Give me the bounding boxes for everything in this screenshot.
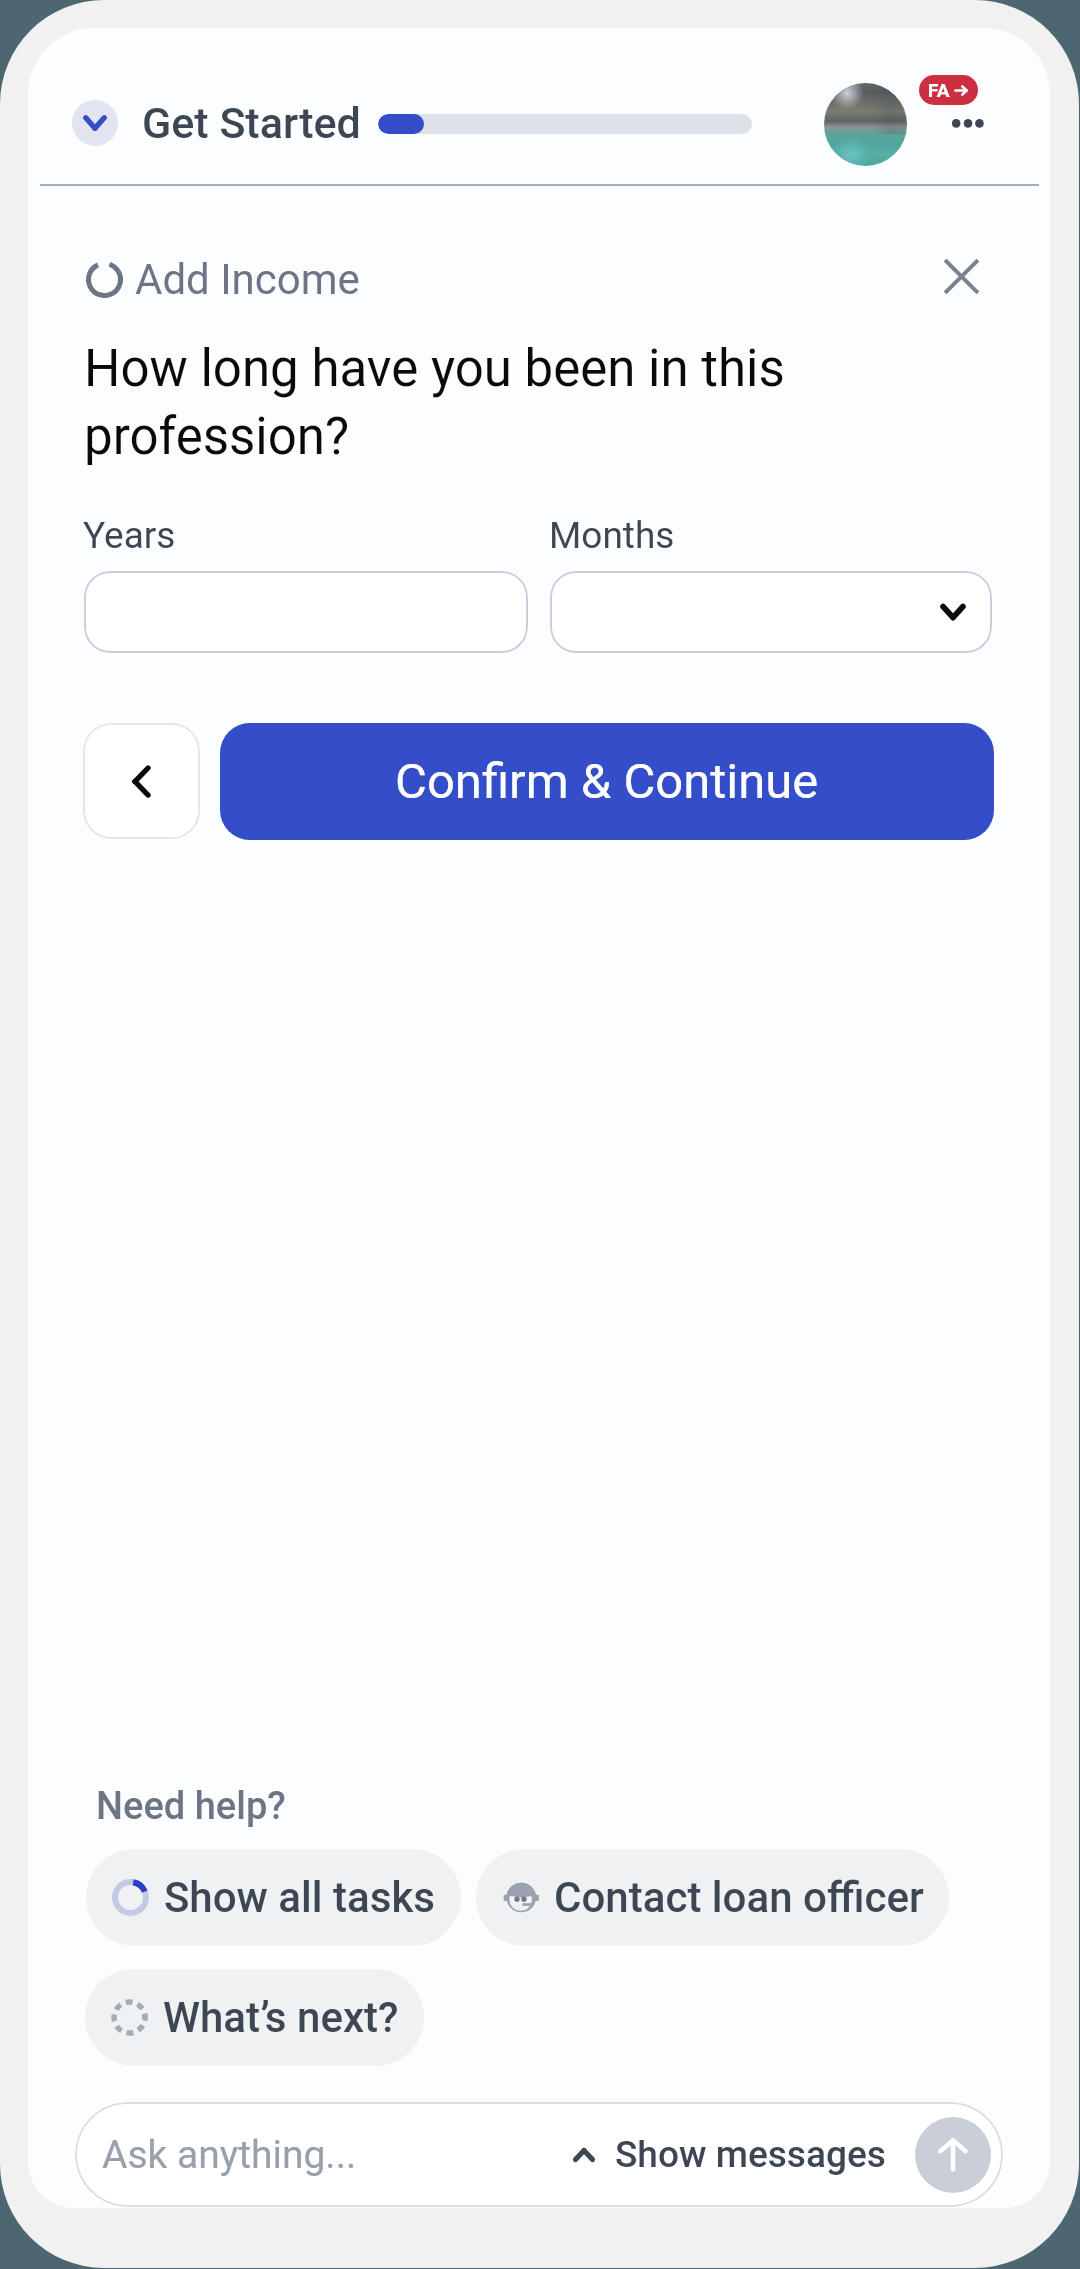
button[interactable]: Send (915, 2117, 991, 2193)
button[interactable]: What’s next? (85, 1969, 424, 2066)
button[interactable]: Months dropdown (550, 571, 992, 653)
button[interactable]: Confirm & Continue (220, 723, 994, 840)
staticText: Ask anything... (102, 2132, 357, 2178)
staticText: Months (549, 514, 675, 557)
staticText: Get Started (142, 98, 361, 148)
staticText: Confirm & Continue (395, 753, 819, 810)
button[interactable]: Back (83, 723, 200, 839)
button[interactable]: Collapse section (72, 100, 118, 146)
button[interactable]: Profile photo (824, 83, 907, 166)
staticText: How long have you been in this professio… (84, 339, 814, 466)
staticText: Years (83, 514, 176, 557)
staticText: What’s next? (163, 1993, 399, 2042)
staticText: Show messages (615, 2133, 886, 2176)
staticText: Need help? (96, 1784, 286, 1829)
button[interactable]: Ask anything... (75, 2102, 1003, 2207)
staticText: Contact loan officer (554, 1873, 924, 1922)
staticText: Show all tasks (164, 1873, 436, 1922)
button[interactable]: Show all tasks (86, 1849, 461, 1946)
button[interactable]: More options (936, 103, 1000, 145)
button[interactable]: Years input field (84, 571, 528, 653)
staticText: FA (928, 79, 950, 101)
button[interactable]: Contact loan officer (476, 1849, 949, 1946)
button[interactable]: FA shortcut (919, 75, 978, 105)
staticText: Add Income (135, 255, 360, 304)
button[interactable]: Close (924, 239, 998, 313)
